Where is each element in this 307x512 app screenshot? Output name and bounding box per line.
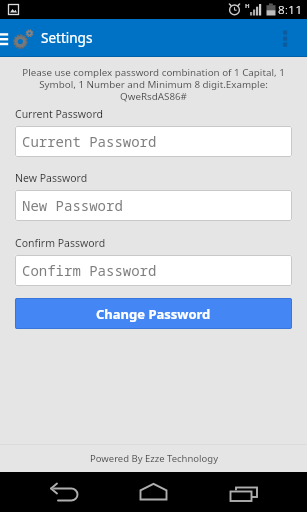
button[interactable]: Current Password [15,126,292,157]
staticText: New Password [15,171,88,185]
staticText: Confirm Password [22,261,157,280]
staticText: 8:11 [278,2,303,18]
button[interactable] [0,472,103,512]
staticText: Current Password [22,132,157,151]
button[interactable]: New Password [15,190,292,221]
staticText: New Password [22,196,123,215]
button[interactable]: Change Password [15,298,292,329]
staticText: Confirm Password [15,236,106,250]
staticText: Powered By Ezze Technology [90,452,218,465]
staticText: H [245,2,250,10]
button[interactable] [277,19,307,57]
staticText: Please use complex password combination … [0,66,307,102]
staticText: Change Password [96,305,211,323]
staticText: Current Password [15,107,104,121]
button[interactable] [205,472,307,512]
button[interactable] [0,19,38,57]
button[interactable]: Confirm Password [15,255,292,286]
button[interactable] [103,472,205,512]
staticText: Settings [41,29,93,47]
